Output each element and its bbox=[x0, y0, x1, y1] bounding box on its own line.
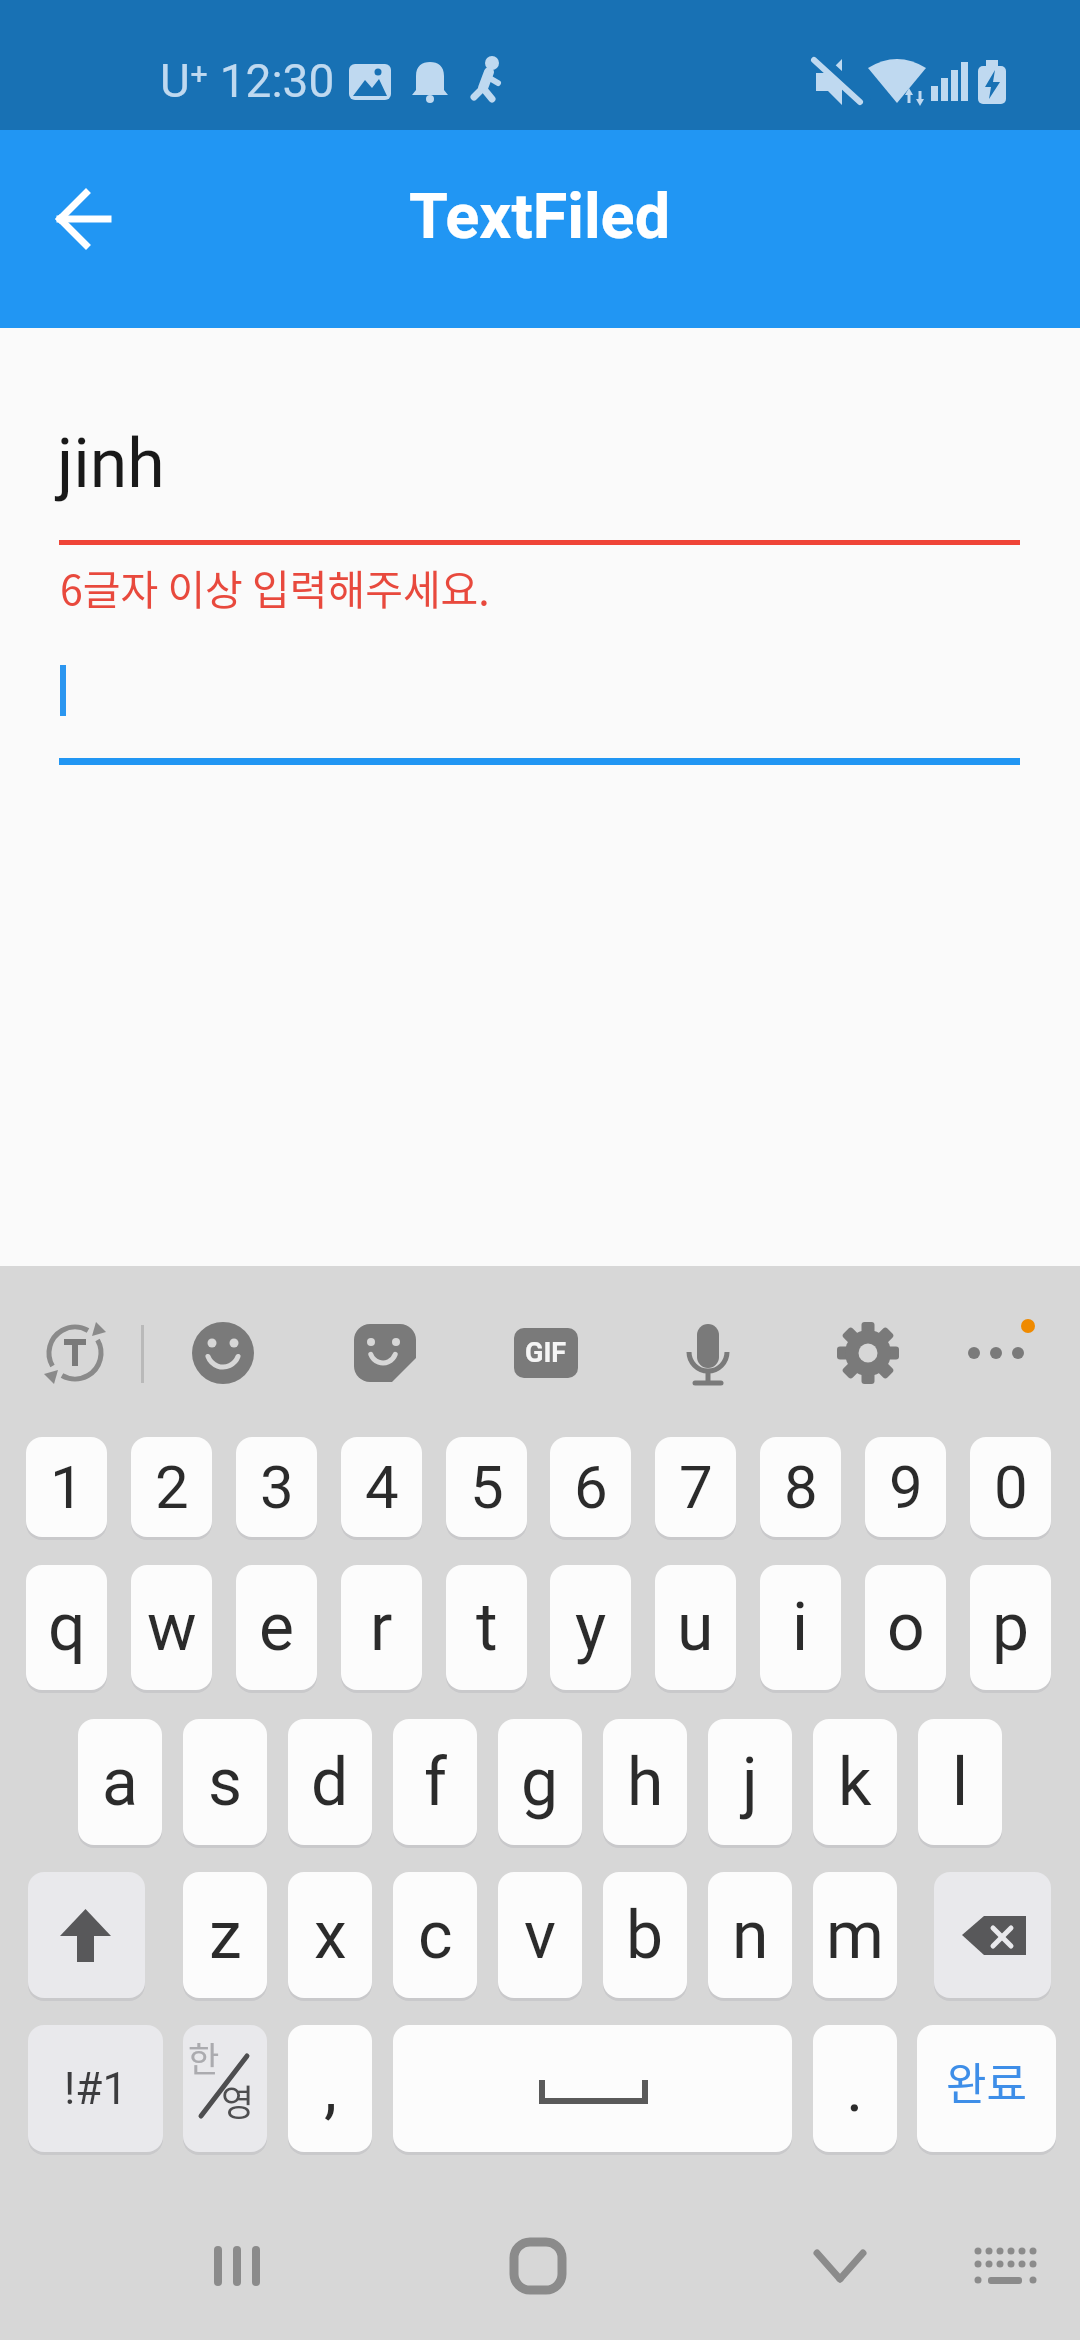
button[interactable]: d bbox=[288, 1719, 372, 1845]
button[interactable] bbox=[170, 2210, 300, 2325]
staticText: n bbox=[732, 1897, 769, 1974]
button[interactable] bbox=[340, 1308, 430, 1398]
button[interactable]: 7 bbox=[655, 1437, 736, 1537]
button[interactable] bbox=[30, 160, 140, 278]
button[interactable]: j bbox=[708, 1719, 792, 1845]
button[interactable]: 5 bbox=[446, 1437, 527, 1537]
staticText: a bbox=[102, 1744, 138, 1821]
staticText: . bbox=[846, 2050, 864, 2127]
button[interactable]: f bbox=[393, 1719, 477, 1845]
button[interactable] bbox=[30, 1308, 120, 1398]
button[interactable]: h bbox=[603, 1719, 687, 1845]
staticText: o bbox=[887, 1589, 925, 1666]
button[interactable]: n bbox=[708, 1872, 792, 1998]
button[interactable] bbox=[917, 2025, 1056, 2152]
staticText: jinh bbox=[57, 424, 165, 504]
button[interactable] bbox=[501, 1308, 591, 1398]
staticText: s bbox=[208, 1744, 243, 1821]
button[interactable]: q bbox=[26, 1565, 107, 1690]
button[interactable]: 4 bbox=[341, 1437, 422, 1537]
staticText: u bbox=[677, 1589, 714, 1666]
staticText: y bbox=[575, 1589, 607, 1666]
button[interactable] bbox=[183, 2025, 267, 2152]
button[interactable]: u bbox=[655, 1565, 736, 1690]
staticText: 1 bbox=[50, 1452, 84, 1522]
button[interactable] bbox=[663, 1308, 753, 1398]
button[interactable]: b bbox=[603, 1872, 687, 1998]
button[interactable]: a bbox=[78, 1719, 162, 1845]
staticText: f bbox=[424, 1744, 447, 1821]
staticText: k bbox=[838, 1744, 872, 1821]
button[interactable] bbox=[475, 2210, 605, 2325]
staticText: j bbox=[742, 1744, 758, 1821]
button[interactable]: s bbox=[183, 1719, 267, 1845]
button[interactable]: t bbox=[446, 1565, 527, 1690]
button[interactable]: 0 bbox=[970, 1437, 1051, 1537]
staticText: 3 bbox=[260, 1452, 294, 1522]
button[interactable]: l bbox=[918, 1719, 1002, 1845]
button[interactable] bbox=[393, 2025, 792, 2152]
staticText: h bbox=[627, 1744, 664, 1821]
staticText: b bbox=[626, 1897, 664, 1974]
button[interactable]: 6 bbox=[550, 1437, 631, 1537]
button[interactable]: 3 bbox=[236, 1437, 317, 1537]
button[interactable]: y bbox=[550, 1565, 631, 1690]
button[interactable]: k bbox=[813, 1719, 897, 1845]
button[interactable]: o bbox=[865, 1565, 946, 1690]
button[interactable]: !#1 bbox=[28, 2025, 163, 2152]
button[interactable]: p bbox=[970, 1565, 1051, 1690]
staticText: 4 bbox=[365, 1452, 399, 1522]
staticText: v bbox=[524, 1897, 556, 1974]
staticText: 6 bbox=[574, 1452, 608, 1522]
staticText: 완료 bbox=[946, 2049, 1027, 2113]
button[interactable] bbox=[934, 1872, 1051, 1998]
staticText: m bbox=[826, 1897, 884, 1974]
staticText: GIF bbox=[525, 1337, 567, 1369]
staticText: 영 bbox=[221, 2074, 255, 2126]
staticText: d bbox=[311, 1744, 349, 1821]
staticText: w bbox=[147, 1589, 197, 1666]
button[interactable]: g bbox=[498, 1719, 582, 1845]
staticText: 6글자 이상 입력해주세요. bbox=[60, 557, 490, 616]
staticText: 한 bbox=[188, 2033, 220, 2082]
button[interactable]: i bbox=[760, 1565, 841, 1690]
staticText: x bbox=[314, 1897, 347, 1974]
button[interactable] bbox=[775, 2210, 905, 2325]
button[interactable] bbox=[823, 1308, 913, 1398]
button[interactable] bbox=[28, 1872, 145, 1998]
button[interactable]: 2 bbox=[131, 1437, 212, 1537]
button[interactable]: m bbox=[813, 1872, 897, 1998]
button[interactable]: 8 bbox=[760, 1437, 841, 1537]
staticText: TextFiled bbox=[409, 180, 671, 254]
staticText: z bbox=[209, 1897, 242, 1974]
staticText: g bbox=[521, 1744, 559, 1821]
staticText: , bbox=[324, 2050, 337, 2127]
button[interactable]: v bbox=[498, 1872, 582, 1998]
button[interactable]: , bbox=[288, 2025, 372, 2152]
button[interactable]: r bbox=[341, 1565, 422, 1690]
staticText: t bbox=[476, 1589, 498, 1666]
staticText: p bbox=[992, 1589, 1030, 1666]
staticText: r bbox=[370, 1589, 393, 1666]
staticText: 2 bbox=[155, 1452, 189, 1522]
staticText: 5 bbox=[470, 1452, 504, 1522]
button[interactable]: x bbox=[288, 1872, 372, 1998]
button[interactable] bbox=[951, 1308, 1041, 1398]
button[interactable]: . bbox=[813, 2025, 897, 2152]
button[interactable] bbox=[178, 1308, 268, 1398]
button[interactable]: 9 bbox=[865, 1437, 946, 1537]
button[interactable] bbox=[955, 2215, 1060, 2325]
staticText: 0 bbox=[994, 1452, 1028, 1522]
staticText: 7 bbox=[679, 1452, 713, 1522]
staticText: c bbox=[418, 1897, 453, 1974]
staticText: e bbox=[259, 1589, 294, 1666]
staticText: l bbox=[952, 1744, 969, 1821]
button[interactable]: e bbox=[236, 1565, 317, 1690]
staticText: !#1 bbox=[64, 2063, 128, 2115]
button[interactable]: 1 bbox=[26, 1437, 107, 1537]
button[interactable]: c bbox=[393, 1872, 477, 1998]
staticText: 9 bbox=[889, 1452, 923, 1522]
button[interactable]: w bbox=[131, 1565, 212, 1690]
staticText: 8 bbox=[784, 1452, 818, 1522]
button[interactable]: z bbox=[183, 1872, 267, 1998]
